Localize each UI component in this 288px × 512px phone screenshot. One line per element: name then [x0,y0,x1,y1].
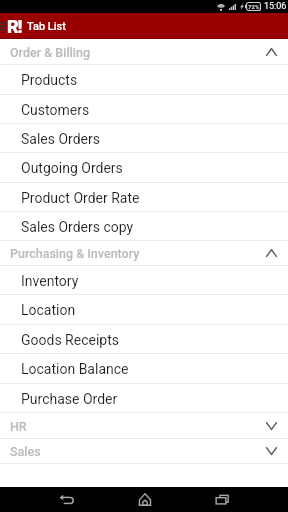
staticText: Products [21,72,78,88]
staticText: Tab List [27,20,66,33]
staticText: Inventory [21,273,79,289]
staticText: Sales [10,444,41,459]
staticText: Location Balance [21,361,129,377]
staticText: Purchase Order [21,391,118,407]
staticText: 15:06 [264,1,287,12]
staticText: Purchasing & Inventory [10,246,140,261]
button[interactable]: Location Balance [0,354,288,384]
button[interactable]: Recent apps [183,487,260,512]
staticText: Goods Receipts [21,332,119,348]
staticText: HR [10,419,27,434]
staticText: Sales Orders [21,131,100,147]
staticText: 72% [248,3,260,10]
button[interactable]: Outgoing Orders [0,153,288,183]
button[interactable]: Sales Orders copy [0,212,288,241]
staticText: Customers [21,102,90,118]
button[interactable]: Product Order Rate [0,183,288,212]
button[interactable]: Sales Orders [0,124,288,153]
button[interactable]: Back [28,487,106,512]
staticText: Order & Billing [10,45,90,60]
button[interactable]: Sales [0,439,288,464]
staticText: Location [21,302,76,318]
button[interactable]: Home [106,487,183,512]
button[interactable]: Purchasing & Inventory [0,241,288,266]
staticText: Product Order Rate [21,190,140,206]
button[interactable]: Goods Receipts [0,325,288,354]
button[interactable]: Order & Billing [0,39,288,65]
button[interactable]: Inventory [0,266,288,295]
staticText: Outgoing Orders [21,160,123,176]
button[interactable]: Menu [0,13,8,39]
button[interactable]: Customers [0,95,288,124]
staticText: R! [7,16,22,37]
button[interactable]: Location [0,295,288,325]
button[interactable]: Products [0,65,288,95]
staticText: Sales Orders copy [21,219,134,235]
button[interactable]: Purchase Order [0,384,288,413]
button[interactable]: HR [0,413,288,439]
